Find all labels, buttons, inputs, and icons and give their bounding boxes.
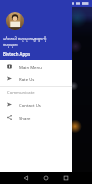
- button[interactable]: Share: [0, 111, 72, 124]
- button[interactable]: Recents: [61, 173, 71, 183]
- staticText: Share: [19, 115, 31, 121]
- staticText: Contact Us: [19, 102, 41, 108]
- staticText: Rate Us: [19, 76, 35, 82]
- button[interactable]: Home: [41, 173, 51, 183]
- staticText: မင်္ဂလာပါ ဗဟုသုတများစွာကို ဗဟုသုတ: [3, 36, 47, 48]
- button[interactable]: Contact Us: [0, 98, 72, 111]
- staticText: Communicate: [7, 90, 35, 96]
- staticText: Bivtech Apps: [3, 51, 31, 57]
- button[interactable]: Back: [21, 173, 31, 183]
- staticText: Main Menu: [19, 64, 42, 70]
- button[interactable]: Main Menu: [0, 60, 72, 73]
- button[interactable]: Rate Us: [0, 72, 72, 85]
